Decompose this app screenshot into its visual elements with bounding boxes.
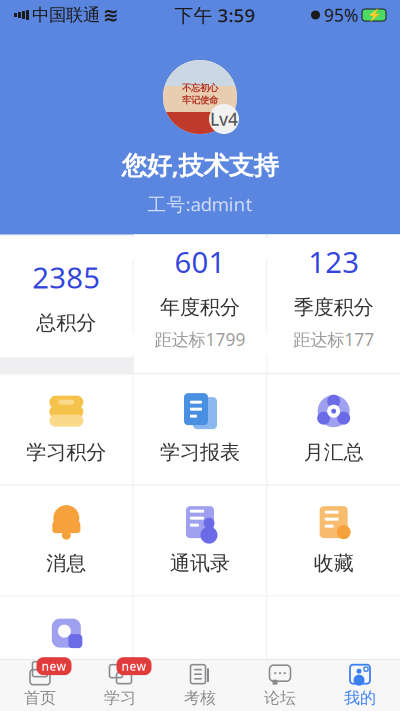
staticText: ≋	[103, 4, 119, 26]
staticText: 我的	[344, 688, 376, 708]
button[interactable]: new	[80, 657, 160, 711]
staticText: 123	[308, 242, 359, 281]
staticText: 总积分	[36, 311, 96, 335]
button[interactable]: new	[0, 657, 80, 711]
staticText: 601	[174, 242, 225, 281]
button[interactable]: 设置	[0, 600, 133, 703]
staticText: 论坛	[264, 688, 296, 708]
button[interactable]: 123	[267, 220, 400, 373]
button[interactable]: 学习积分	[0, 378, 133, 481]
staticText: new	[121, 658, 146, 674]
button[interactable]: 月汇总	[267, 378, 400, 481]
staticText: 学习积分	[26, 440, 106, 465]
button[interactable]: 通讯录	[134, 489, 266, 592]
staticText: 设置	[46, 662, 86, 687]
staticText: 通讯录	[170, 551, 230, 576]
button[interactable]: 我的	[320, 657, 400, 711]
staticText: 不忘初心	[182, 82, 218, 93]
staticText: 收藏	[314, 551, 354, 576]
staticText: Lv4	[210, 107, 238, 130]
staticText: 下午 3:59	[174, 3, 255, 27]
staticText: new	[41, 658, 66, 674]
staticText: 学习	[104, 688, 136, 708]
staticText: 消息	[46, 551, 86, 576]
button[interactable]: 2385	[0, 236, 133, 357]
staticText: 年度积分	[160, 295, 240, 320]
button[interactable]: 消息	[0, 489, 133, 592]
staticText: ⚡	[366, 8, 381, 22]
staticText: 工号:admint	[147, 192, 252, 216]
button[interactable]: 论坛	[240, 657, 320, 711]
button[interactable]: 601	[134, 220, 266, 373]
staticText: 季度积分	[294, 295, 374, 320]
staticText: 距达标177	[293, 328, 374, 351]
staticText: 中国联通	[32, 4, 100, 26]
button[interactable]: 考核	[160, 657, 240, 711]
staticText: 月汇总	[304, 440, 364, 465]
staticText: 学习报表	[160, 440, 240, 465]
staticText: 牢记使命	[182, 94, 218, 106]
staticText: 95%	[324, 3, 358, 26]
staticText: 首页	[24, 688, 56, 708]
staticText: 2385	[32, 258, 100, 297]
staticText: 您好,技术支持	[121, 148, 278, 182]
staticText: 考核	[184, 688, 216, 708]
staticText: 距达标1799	[154, 328, 245, 351]
button[interactable]: 学习报表	[134, 378, 266, 481]
button[interactable]: 收藏	[267, 489, 400, 592]
